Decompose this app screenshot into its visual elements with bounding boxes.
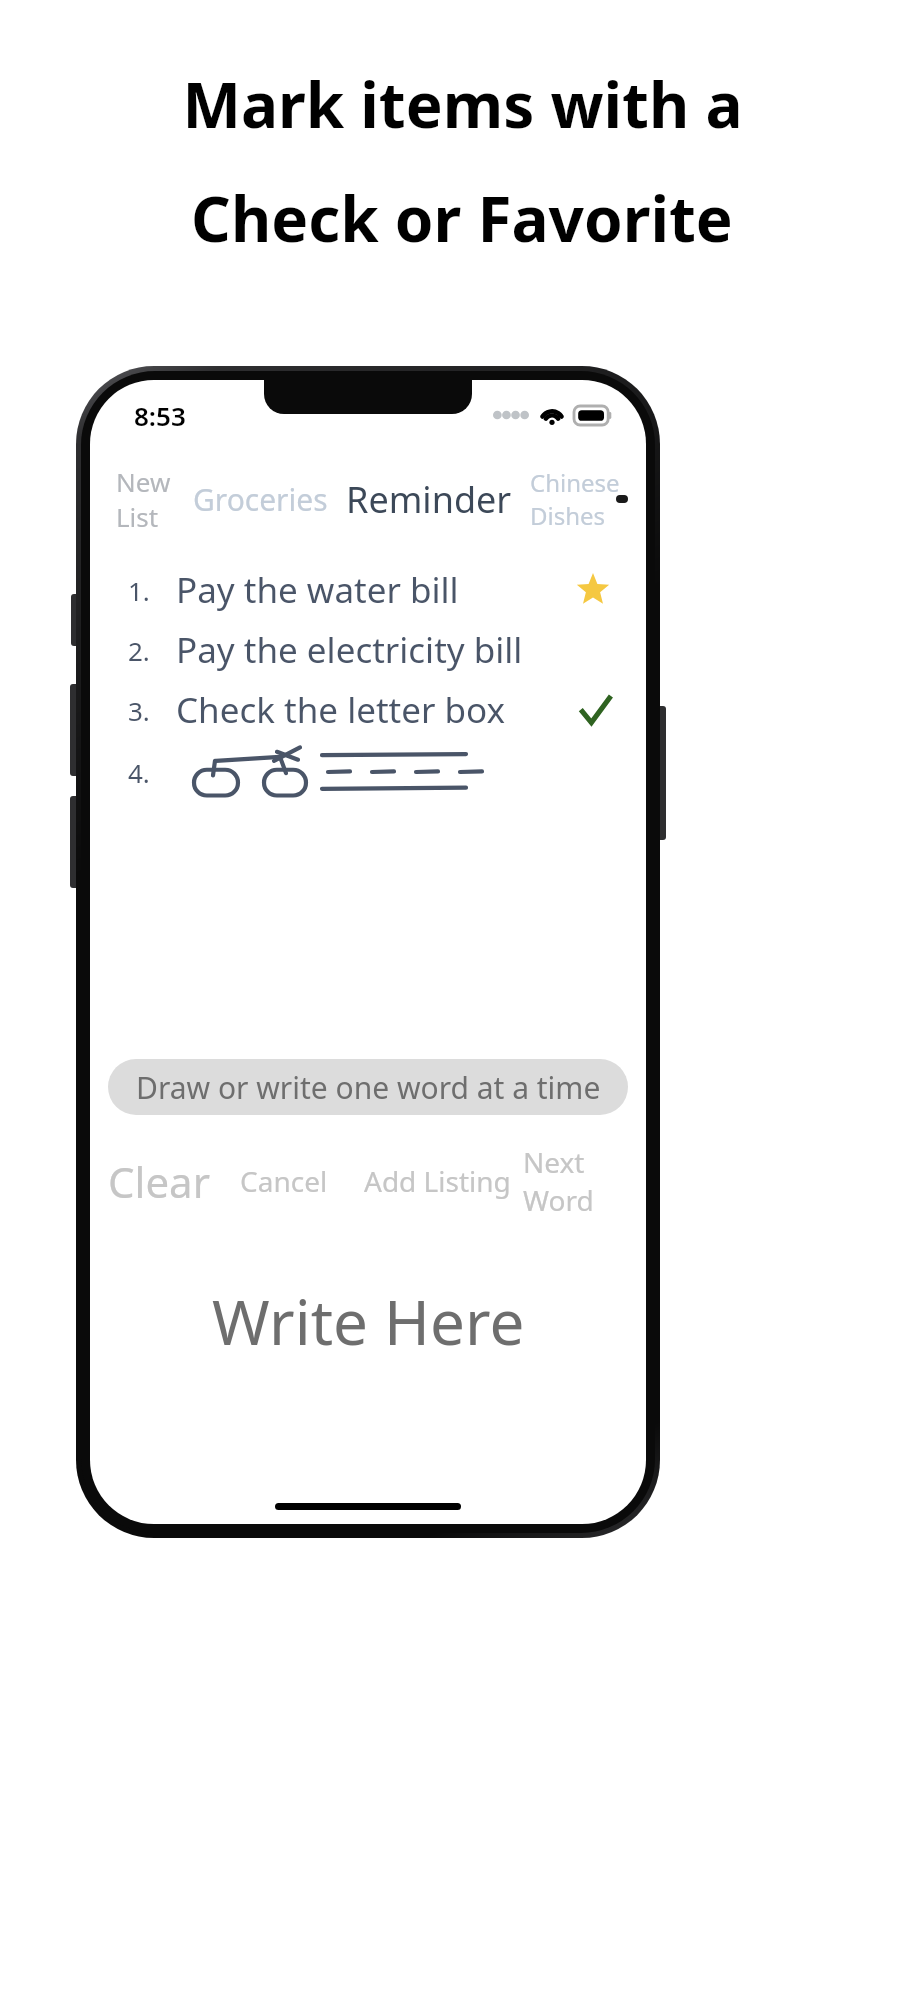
button[interactable]: 2.	[90, 620, 646, 680]
staticText: Check the letter box	[176, 686, 506, 734]
staticText: Groceries	[193, 479, 328, 520]
staticText: 3.	[128, 693, 150, 728]
button[interactable]: Draw or write one word at a time	[108, 1059, 628, 1115]
staticText: Reminder	[346, 475, 512, 524]
staticText: New	[116, 464, 171, 499]
staticText: 2.	[128, 633, 150, 668]
staticText: Next Word	[523, 1143, 628, 1219]
button[interactable]: 1.	[90, 560, 646, 620]
staticText: Add Listing	[364, 1162, 511, 1200]
staticText: Clear	[108, 1153, 210, 1210]
staticText: Cancel	[240, 1162, 328, 1200]
button[interactable]: Clear	[106, 1147, 212, 1216]
staticText: 4.	[128, 755, 150, 790]
staticText: Draw or write one word at a time	[136, 1067, 601, 1108]
staticText: Dishes	[530, 499, 606, 532]
staticText: Mark items with a	[182, 62, 743, 146]
button[interactable]: New	[116, 464, 171, 534]
button[interactable]: 3.	[90, 680, 646, 740]
button[interactable]: Reminder	[346, 471, 512, 528]
staticText: 1.	[128, 573, 150, 608]
staticText: Check or Favorite	[191, 176, 733, 260]
staticText: 8:53	[134, 398, 186, 433]
button[interactable]: Chinese	[530, 466, 620, 532]
button[interactable]: Add Listing	[362, 1156, 513, 1206]
staticText: Chinese	[530, 466, 620, 499]
button[interactable]: Cancel	[238, 1156, 330, 1206]
button[interactable]: More options	[620, 476, 624, 522]
button[interactable]: Groceries	[193, 475, 328, 524]
staticText: Write Here	[212, 1279, 525, 1363]
staticText: Pay the electricity bill	[176, 626, 523, 674]
button[interactable]: Bicycle drawing item	[90, 740, 646, 804]
staticText: List	[116, 499, 159, 534]
button[interactable]: Next Word	[521, 1137, 630, 1225]
staticText: Pay the water bill	[176, 566, 459, 614]
